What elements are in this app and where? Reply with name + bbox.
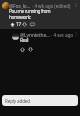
button[interactable]: Upvote xyxy=(10,22,15,27)
staticText: @Fox_lo... xyxy=(9,3,31,9)
staticText: Pou me running from xyxy=(9,8,51,14)
staticText: Reply added xyxy=(5,98,30,104)
button[interactable]: Downvote xyxy=(28,47,33,52)
button[interactable]: Profile photo xyxy=(12,33,19,40)
button[interactable]: More options for reply xyxy=(73,31,79,37)
staticText: · 4 wk ago (edited) xyxy=(31,3,71,9)
button[interactable]: Reply xyxy=(30,22,35,27)
staticText: @Lynniethe... xyxy=(20,32,50,38)
staticText: Real xyxy=(20,37,29,43)
staticText: · 4 sec ago xyxy=(50,32,74,38)
button[interactable]: More options xyxy=(73,2,79,8)
button[interactable]: Profile photo xyxy=(2,2,9,9)
button[interactable]: Reply added xyxy=(2,95,78,106)
button[interactable]: Downvote xyxy=(22,22,27,27)
button[interactable]: Upvote xyxy=(20,47,25,52)
staticText: homework: xyxy=(9,14,31,20)
staticText: 17 xyxy=(16,21,21,27)
